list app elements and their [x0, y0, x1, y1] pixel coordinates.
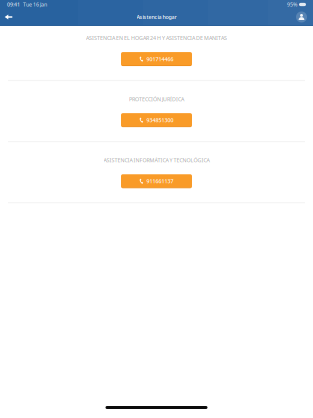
button[interactable]: 934851300 [121, 113, 192, 127]
staticText: 911661137 [146, 178, 173, 185]
staticText: 09:41 [7, 1, 20, 8]
staticText: 901714466 [146, 55, 173, 63]
staticText: 95% [287, 1, 297, 8]
staticText: Asistencia hogar [136, 13, 176, 21]
staticText: PROTECCIÓN JURÍDICA [129, 96, 184, 103]
staticText: ASISTENCIA EN EL HOGAR 24 H Y ASISTENCIA… [86, 34, 227, 42]
button[interactable]: Account [293, 9, 310, 25]
staticText: 934851300 [146, 117, 173, 124]
staticText: ASISTENCIA INFORMÁTICA Y TECNOLÓGICA [103, 157, 209, 164]
button[interactable]: 911661137 [121, 174, 192, 188]
staticText: Tue 16 Jan [23, 1, 47, 8]
button[interactable]: 901714466 [121, 52, 192, 66]
button[interactable]: Back [0, 9, 17, 25]
